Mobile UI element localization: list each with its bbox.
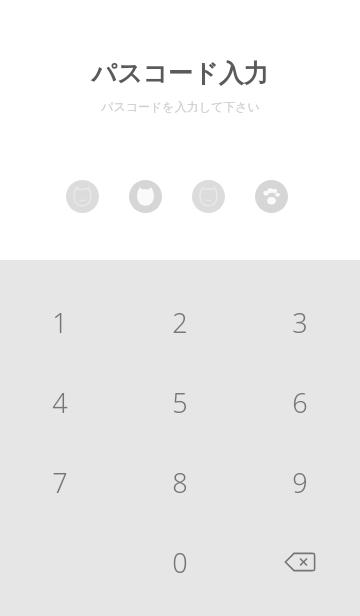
staticText: 0: [172, 544, 188, 581]
button[interactable]: 8: [120, 442, 240, 522]
button[interactable]: 7: [0, 442, 120, 522]
staticText: パスコードを入力して下さい: [101, 99, 260, 114]
button[interactable]: 0: [120, 522, 240, 602]
button[interactable]: Delete: [240, 522, 360, 602]
staticText: パスコード入力: [91, 58, 269, 89]
button[interactable]: [66, 180, 99, 213]
staticText: 9: [292, 464, 308, 501]
staticText: 2: [172, 304, 188, 341]
button[interactable]: 4: [0, 362, 120, 442]
staticText: 1: [52, 304, 68, 341]
button[interactable]: 2: [120, 282, 240, 362]
button[interactable]: 9: [240, 442, 360, 522]
button[interactable]: [129, 180, 162, 213]
button[interactable]: 5: [120, 362, 240, 442]
button[interactable]: [192, 180, 225, 213]
button[interactable]: [255, 180, 288, 213]
staticText: 6: [292, 384, 308, 421]
button[interactable]: 1: [0, 282, 120, 362]
button[interactable]: 3: [240, 282, 360, 362]
staticText: 8: [172, 464, 188, 501]
button[interactable]: 6: [240, 362, 360, 442]
staticText: 3: [292, 304, 308, 341]
staticText: 5: [172, 384, 188, 421]
staticText: 7: [52, 464, 68, 501]
staticText: 4: [52, 384, 68, 421]
